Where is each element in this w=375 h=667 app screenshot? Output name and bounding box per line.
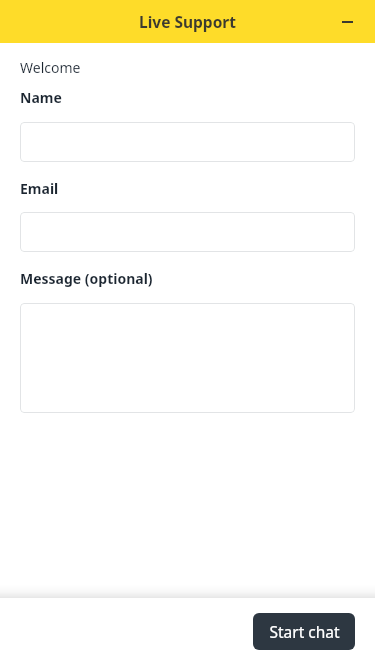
staticText: Name bbox=[20, 88, 62, 107]
staticText: Welcome bbox=[20, 58, 81, 77]
button[interactable]: Email input field bbox=[20, 212, 355, 252]
staticText: Start chat bbox=[269, 621, 340, 642]
button[interactable]: Minimize bbox=[331, 6, 363, 38]
staticText: Email bbox=[20, 179, 59, 198]
staticText: Message (optional) bbox=[20, 269, 153, 288]
button[interactable]: Start chat bbox=[253, 613, 355, 650]
staticText: Live Support bbox=[139, 11, 236, 32]
button[interactable]: Name input field bbox=[20, 122, 355, 162]
button[interactable]: Message input field bbox=[20, 303, 355, 413]
